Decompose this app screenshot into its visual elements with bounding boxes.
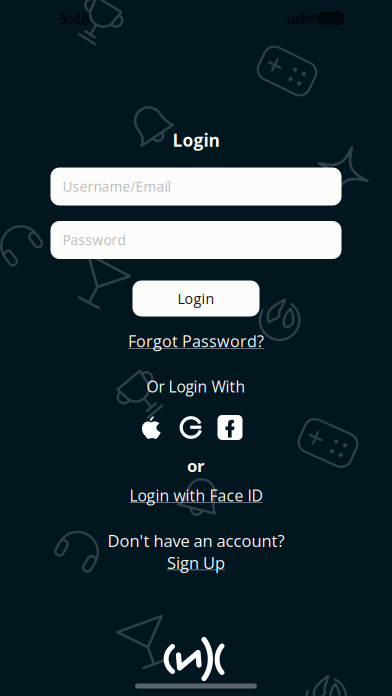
staticText: or [187,454,205,477]
staticText: 5:48 [59,8,90,30]
button[interactable]: Login [132,280,259,316]
button[interactable]: Sign in with Google [178,415,203,440]
staticText: Login with Face ID [129,485,262,506]
button[interactable]: Forgot Password? [128,330,264,352]
staticText: Login [172,128,219,152]
button[interactable]: Sign in with Facebook [217,415,242,440]
staticText: Forgot Password? [128,330,264,352]
staticText: Sign Up [167,551,225,574]
button[interactable]: Sign Up [167,551,225,574]
staticText: Password [62,231,125,249]
staticText: Or Login With [146,376,245,397]
button[interactable]: Sign in with Apple [137,415,162,440]
staticText: Username/Email [62,177,170,196]
button[interactable]: Login with Face ID [129,485,262,506]
staticText: Login [177,289,214,308]
staticText: Don't have an account? [107,529,284,552]
